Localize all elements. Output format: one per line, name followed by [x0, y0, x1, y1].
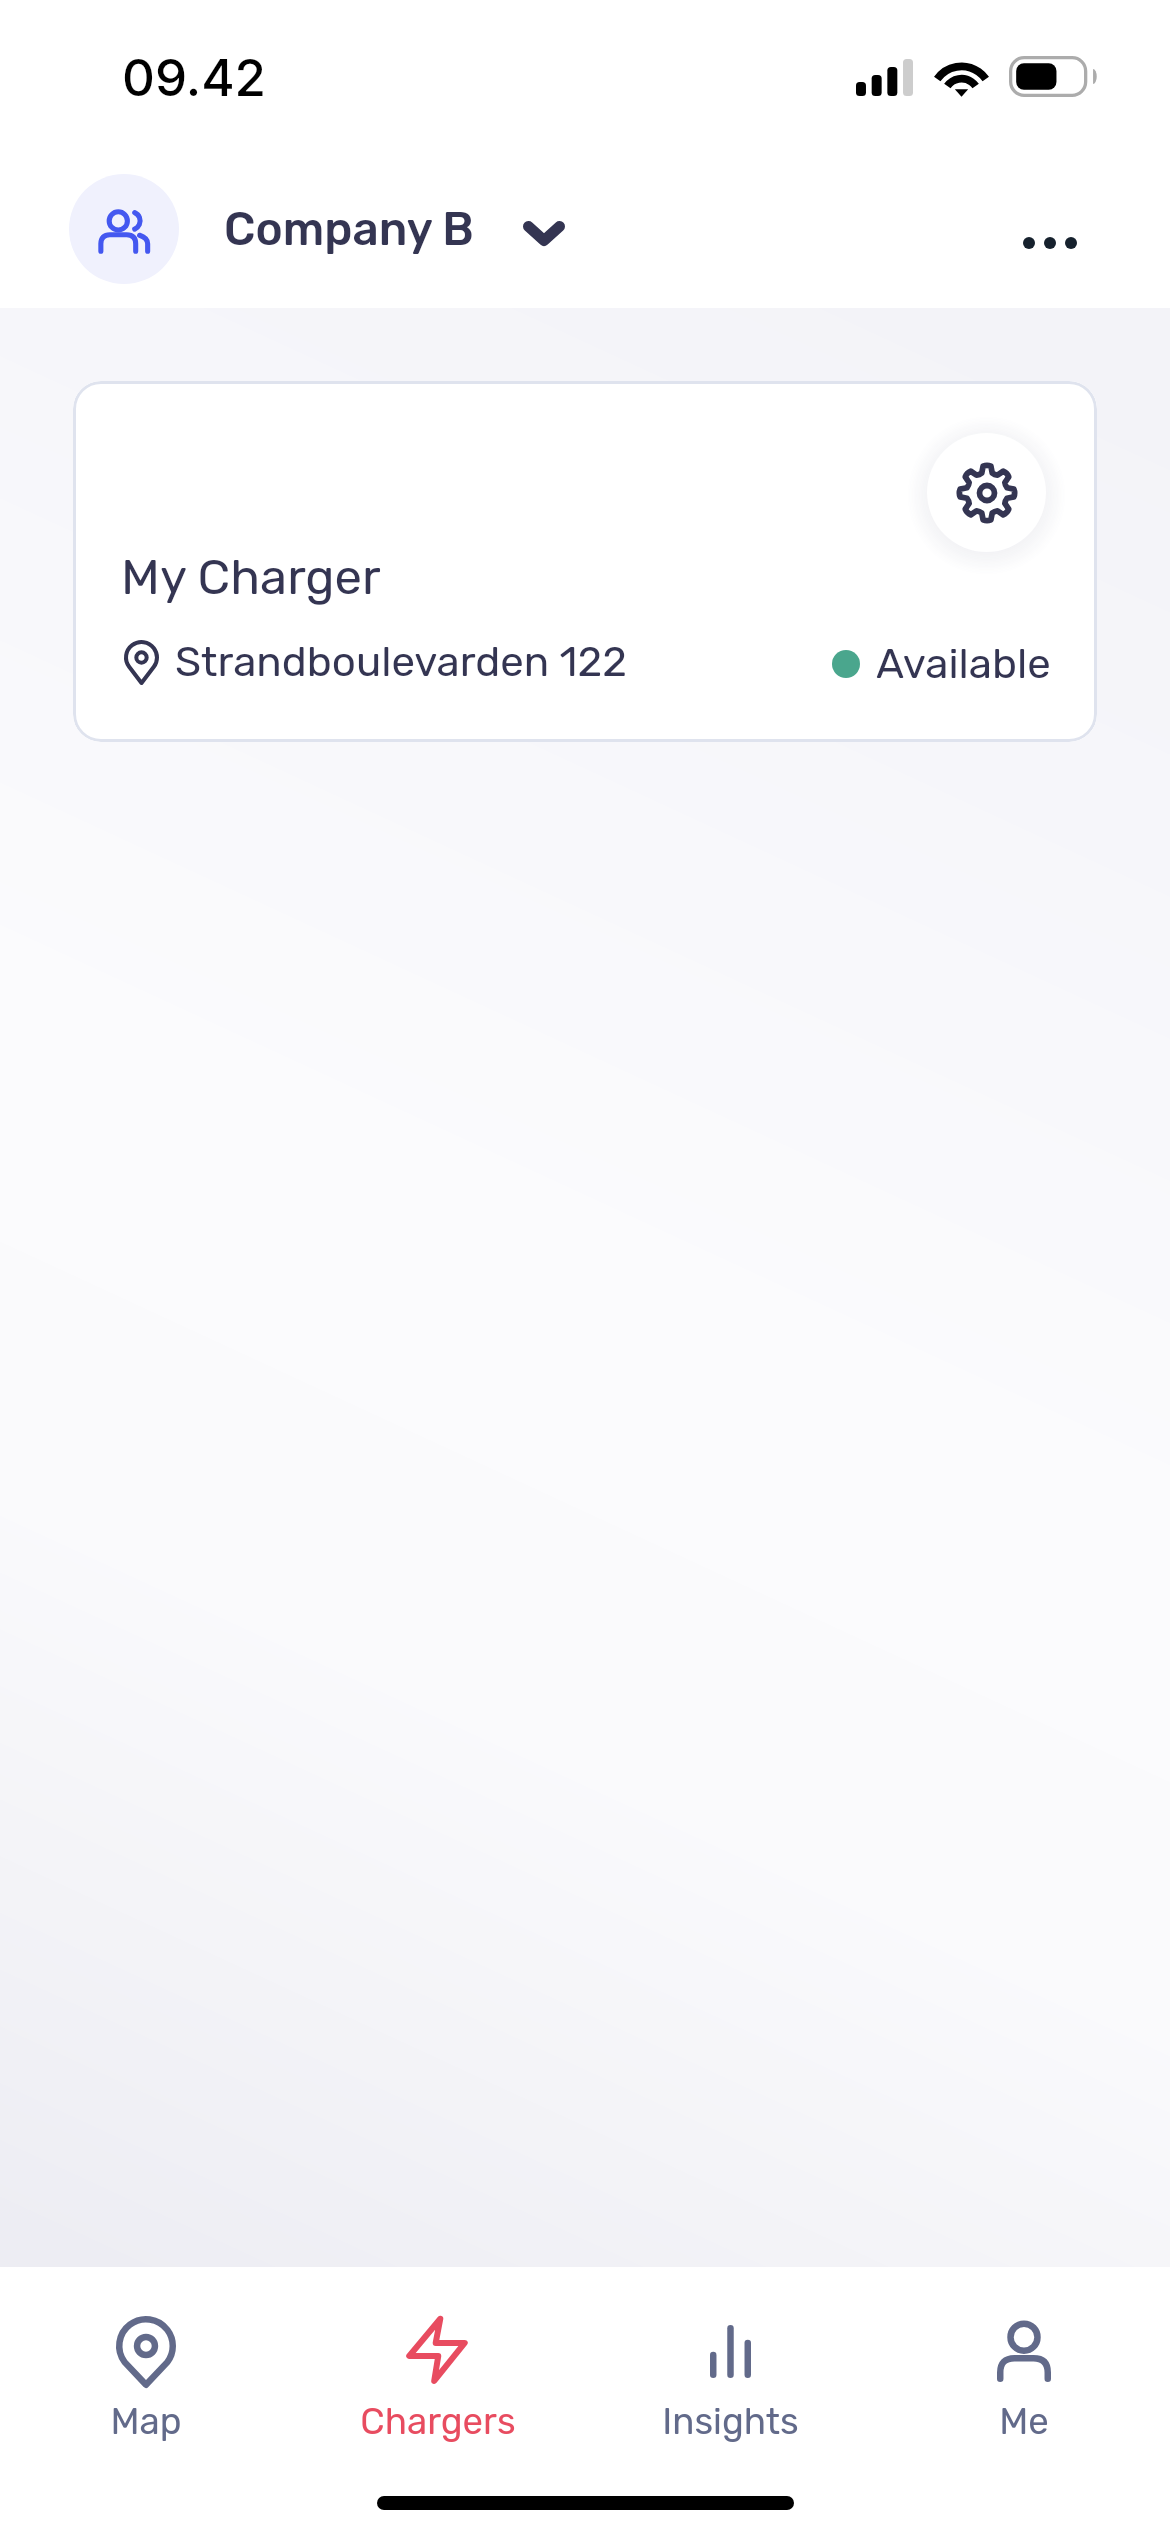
staticText: Company B	[224, 202, 474, 257]
staticText: Insights	[662, 2400, 799, 2443]
button[interactable]: Me	[877, 2267, 1170, 2467]
staticText: My Charger	[121, 548, 381, 606]
staticText: Chargers	[360, 2400, 516, 2443]
button[interactable]: Insights	[584, 2267, 877, 2467]
staticText: 09.42	[122, 47, 267, 109]
button[interactable]: My Charger	[73, 381, 1097, 742]
staticText: Strandboulevarden 122	[175, 637, 627, 687]
staticText: Available	[876, 639, 1051, 689]
staticText: Me	[999, 2400, 1049, 2443]
button[interactable]: Map	[0, 2267, 292, 2467]
button[interactable]: Chargers	[292, 2267, 584, 2467]
button[interactable]: Settings	[907, 413, 1066, 572]
staticText: Map	[110, 2400, 182, 2443]
button[interactable]: More options	[995, 193, 1105, 293]
button[interactable]: Company B	[54, 161, 580, 297]
